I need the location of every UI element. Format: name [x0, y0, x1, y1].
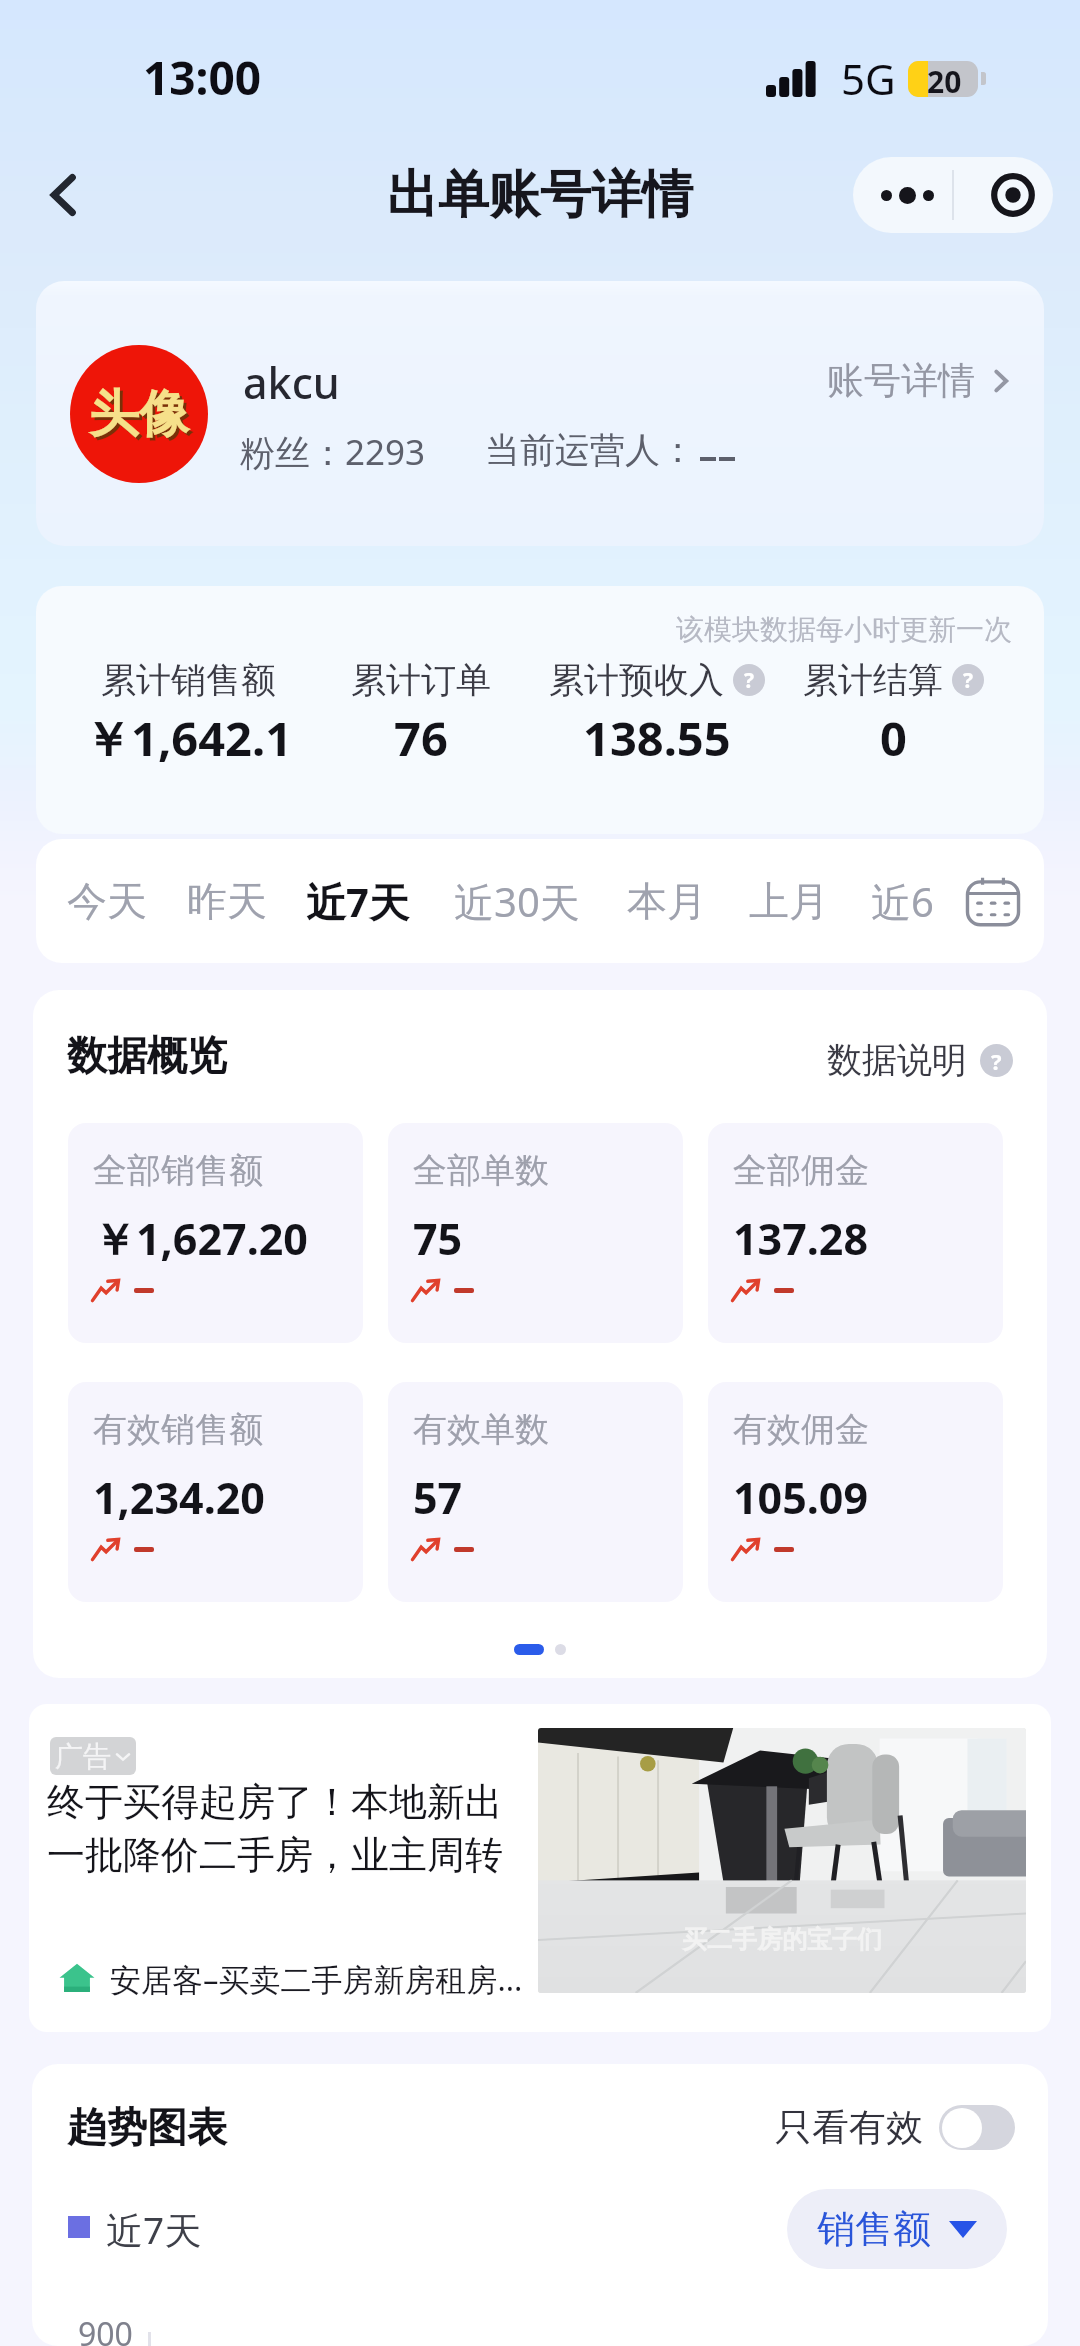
staticText: 有效销售额	[93, 1408, 263, 1451]
staticText: 全部销售额	[93, 1149, 263, 1192]
staticText: 13:00	[143, 46, 262, 109]
staticText: 销售额	[817, 2205, 931, 2253]
staticText: 趋势图表	[67, 2102, 227, 2152]
button[interactable]: Pick date range	[951, 839, 1035, 963]
staticText: 昨天	[187, 876, 267, 926]
staticText: 近7天	[106, 2204, 202, 2255]
button[interactable]: 头像	[36, 281, 1044, 546]
staticText: 当前运营人：	[485, 428, 695, 472]
staticText: 75	[413, 1209, 463, 1268]
staticText: akcu	[243, 353, 340, 412]
button[interactable]: 有效佣金	[708, 1382, 1003, 1602]
staticText: 全部佣金	[733, 1149, 869, 1192]
staticText: 近6	[871, 874, 934, 929]
staticText: 76	[394, 706, 448, 770]
staticText: 138.55	[583, 706, 731, 770]
staticText: 1,234.20	[93, 1468, 265, 1527]
staticText: 数据概览	[67, 1030, 227, 1080]
staticText: 0	[880, 706, 907, 770]
button[interactable]: 本月	[627, 839, 707, 963]
button[interactable]: 有效销售额	[68, 1382, 363, 1602]
staticText: 137.28	[733, 1209, 869, 1268]
staticText: 近7天	[306, 874, 409, 929]
button[interactable]: 全部销售额	[68, 1123, 363, 1343]
button[interactable]: 全部佣金	[708, 1123, 1003, 1343]
staticText: 近30天	[454, 874, 580, 929]
staticText: 只看有效	[775, 2104, 923, 2151]
staticText: 有效佣金	[733, 1408, 869, 1451]
button[interactable]: 上月	[749, 839, 829, 963]
staticText: 累计订单	[351, 658, 491, 702]
staticText: ￥1,627.20	[93, 1209, 308, 1268]
button[interactable]: 昨天	[187, 839, 267, 963]
staticText: 该模块数据每小时更新一次	[676, 612, 1012, 647]
staticText: 20	[927, 61, 978, 97]
button[interactable]: More	[853, 157, 952, 233]
button[interactable]: 销售额	[787, 2189, 1007, 2269]
staticText: 有效单数	[413, 1408, 549, 1451]
staticText: 57	[413, 1468, 463, 1527]
button[interactable]: 广告	[29, 1704, 1051, 2032]
staticText: 5G	[841, 50, 896, 107]
other: Page indicator	[514, 1636, 566, 1663]
staticText: 全部单数	[413, 1149, 549, 1192]
button[interactable]: 近7天	[306, 839, 409, 963]
staticText: 今天	[67, 876, 147, 926]
staticText: 广告	[55, 1739, 111, 1774]
button[interactable]: 有效单数	[388, 1382, 683, 1602]
staticText: 头像	[92, 386, 192, 449]
staticText: 900	[78, 2312, 133, 2346]
button[interactable]: 近30天	[454, 839, 580, 963]
staticText: 上月	[749, 876, 829, 926]
staticText: ?	[744, 666, 755, 695]
staticText: 头像	[89, 383, 189, 446]
staticText: 粉丝：2293	[240, 428, 426, 476]
staticText: 数据说明	[827, 1038, 967, 1082]
staticText: 累计结算	[803, 658, 943, 702]
button[interactable]: 只看有效	[775, 2104, 1015, 2151]
staticText: 累计销售额	[101, 658, 276, 702]
staticText: ?	[963, 666, 974, 695]
button[interactable]: Close mini program	[954, 157, 1053, 233]
staticText: 累计预收入	[549, 658, 724, 702]
staticText: 安居客–买卖二手房新房租房...	[110, 1958, 523, 2000]
button[interactable]: 近6	[871, 839, 934, 963]
button[interactable]: Back	[21, 153, 105, 237]
button[interactable]: 今天	[67, 839, 147, 963]
staticText: 出单账号详情	[387, 163, 693, 227]
staticText: ￥1,642.1	[84, 706, 293, 770]
button[interactable]: 全部单数	[388, 1123, 683, 1343]
staticText: 终于买得起房了！本地新出 一批降价二手房，业主周转	[47, 1778, 503, 1879]
staticText: 买二手房的宝子们	[682, 1924, 882, 1955]
button[interactable]: 数据说明	[827, 1038, 1013, 1082]
button[interactable]: 账号详情	[827, 357, 1014, 404]
staticText: ?	[991, 1046, 1002, 1076]
staticText: 本月	[627, 876, 707, 926]
staticText: 105.09	[733, 1468, 869, 1527]
staticText: 账号详情	[827, 357, 975, 404]
